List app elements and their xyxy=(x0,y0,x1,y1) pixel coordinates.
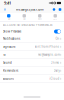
staticText: ACCOUNT SETTINGS AND PREFERENCES xyxy=(3,23,52,27)
staticText: Sound xyxy=(3,61,12,65)
button[interactable]: Back xyxy=(2,6,8,13)
button[interactable]: Video xyxy=(32,14,47,20)
staticText: 9:41 xyxy=(4,0,11,6)
staticText: Calls xyxy=(23,18,26,20)
staticText: Account xyxy=(3,77,14,81)
staticText: Daily xyxy=(54,69,60,73)
button[interactable]: Compose xyxy=(58,6,62,13)
staticText: Signature xyxy=(3,45,16,49)
staticText: Reminders xyxy=(3,69,18,73)
staticText: Notifications xyxy=(3,37,20,41)
button[interactable]: Account xyxy=(0,75,64,83)
staticText: To xyxy=(3,53,6,57)
staticText: iCloud xyxy=(50,77,60,81)
button[interactable]: More xyxy=(47,14,63,20)
staticText: Show Previews xyxy=(3,30,21,33)
staticText: messages_user.com xyxy=(16,8,44,11)
staticText: More xyxy=(53,18,57,20)
button[interactable]: Mail xyxy=(1,14,16,20)
button[interactable]: Reminders xyxy=(0,67,64,75)
staticText: me@example.com xyxy=(38,53,60,57)
staticText: Sent from iPhone xyxy=(35,45,60,49)
staticText: Video xyxy=(38,18,42,20)
button[interactable]: Signature xyxy=(0,43,64,51)
button[interactable]: Sound xyxy=(0,59,64,67)
button[interactable]: Calls xyxy=(16,14,32,20)
staticText: Chime xyxy=(51,61,60,65)
button[interactable]: Search xyxy=(52,6,56,13)
button[interactable]: To xyxy=(0,51,64,59)
button[interactable]: Notifications xyxy=(0,35,64,43)
button[interactable]: Show Previews xyxy=(0,28,64,35)
staticText: Mail xyxy=(8,18,10,20)
staticText: On xyxy=(56,37,60,41)
